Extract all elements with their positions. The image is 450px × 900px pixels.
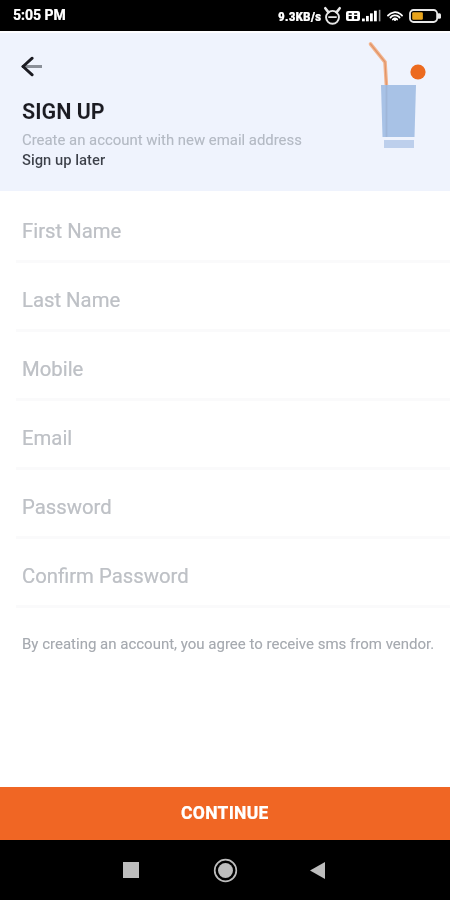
staticText: Create an account with new email address <box>22 131 302 148</box>
button[interactable]: Back <box>14 48 50 84</box>
staticText: Sign up later <box>22 151 106 168</box>
staticText: By creating an account, you agree to rec… <box>22 635 435 653</box>
button[interactable]: Email <box>0 408 450 477</box>
staticText: SIGN UP <box>22 99 105 124</box>
staticText: CONTINUE <box>181 803 269 824</box>
button[interactable]: Last Name <box>0 270 450 339</box>
staticText: Confirm Password <box>22 564 189 588</box>
staticText: 5:05 PM <box>13 7 66 23</box>
staticText: First Name <box>22 219 122 243</box>
staticText: Email <box>22 426 73 450</box>
staticText: Mobile <box>22 357 84 381</box>
button[interactable]: Password <box>0 477 450 546</box>
button[interactable]: Mobile <box>0 339 450 408</box>
staticText: Last Name <box>22 288 121 312</box>
button[interactable]: Back <box>287 840 347 900</box>
staticText: Password <box>22 495 112 519</box>
button[interactable]: First Name <box>0 201 450 270</box>
staticText: 9.3KB/s <box>278 8 322 24</box>
button[interactable]: CONTINUE <box>0 787 450 840</box>
button[interactable]: Confirm Password <box>0 546 450 615</box>
button[interactable]: Recent apps <box>101 840 161 900</box>
button[interactable]: Sign up later <box>22 151 106 168</box>
button[interactable]: Home <box>195 840 255 900</box>
